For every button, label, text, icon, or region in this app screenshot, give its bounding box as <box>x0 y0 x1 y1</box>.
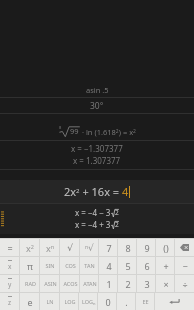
button[interactable]: ASIN <box>40 275 60 292</box>
button[interactable]: () <box>156 239 175 256</box>
button[interactable]: = <box>0 239 20 256</box>
staticText: LOG <box>64 298 76 305</box>
button[interactable]: 3 <box>137 275 156 292</box>
staticText: 2 <box>125 278 131 290</box>
staticText: = <box>7 242 13 254</box>
button[interactable]: × <box>156 275 175 292</box>
staticText: 30° <box>90 100 104 112</box>
staticText: 2 <box>115 220 119 229</box>
button[interactable]: TAN <box>80 257 99 274</box>
staticText: 6 <box>144 260 150 272</box>
staticText: EE <box>142 298 149 305</box>
button[interactable]: LN <box>40 293 60 310</box>
button[interactable]: z <box>0 293 20 310</box>
button[interactable]: asin .5 <box>0 83 194 97</box>
staticText: · ln (1.6182) = x2 <box>80 127 136 137</box>
staticText: π <box>27 260 33 272</box>
button[interactable]: π <box>20 257 40 274</box>
staticText: ACOS <box>63 280 78 287</box>
button[interactable]: RAD <box>20 275 40 292</box>
staticText: n√ <box>85 243 94 253</box>
staticText: 0 <box>105 296 111 308</box>
button[interactable]: x2 <box>20 239 40 256</box>
button[interactable]: SIN <box>40 257 60 274</box>
button[interactable]: Backspace <box>175 239 194 256</box>
staticText: x = −4 − 3 <box>75 207 111 218</box>
staticText: e <box>27 296 33 308</box>
button[interactable]: 4 <box>99 257 118 274</box>
button[interactable]: 8 <box>118 239 137 256</box>
button[interactable]: 0 <box>98 293 117 310</box>
staticText: x = 1.307377 <box>73 155 121 166</box>
button[interactable]: 1 <box>99 275 118 292</box>
staticText: () <box>163 242 169 254</box>
button[interactable]: EE <box>136 293 155 310</box>
staticText: y <box>8 280 12 289</box>
staticText: 4 <box>106 260 112 272</box>
staticText: x2 <box>26 242 34 254</box>
button[interactable]: LOGn <box>79 293 98 310</box>
staticText: x = −1.307377 <box>71 143 123 154</box>
staticText: ATAN <box>83 280 97 287</box>
staticText: TAN <box>84 262 95 269</box>
staticText: z <box>8 298 12 307</box>
button[interactable]: − <box>175 257 194 274</box>
button[interactable]: n√ <box>80 239 99 256</box>
staticText: × <box>163 278 169 290</box>
button[interactable]: ATAN <box>80 275 99 292</box>
staticText: 1 <box>106 278 112 290</box>
button[interactable]: 8 <box>0 123 194 140</box>
staticText: 8 <box>125 242 131 254</box>
staticText: 9 <box>144 242 150 254</box>
button[interactable]: √ <box>60 239 80 256</box>
staticText: + <box>163 260 169 272</box>
button[interactable]: 6 <box>137 257 156 274</box>
button[interactable]: y <box>0 275 20 292</box>
staticText: 8 <box>59 125 62 130</box>
button[interactable]: LOG <box>60 293 79 310</box>
staticText: ASIN <box>44 280 57 287</box>
button[interactable]: xn <box>40 239 60 256</box>
button[interactable]: 7 <box>99 239 118 256</box>
button[interactable]: COS <box>60 257 80 274</box>
staticText: RAD <box>25 280 36 287</box>
button[interactable]: e <box>20 293 40 310</box>
button[interactable]: 2x2 + 16x = 4 <box>0 180 194 203</box>
button[interactable]: 30° <box>0 98 194 113</box>
staticText: 3 <box>144 278 150 290</box>
staticText: ÷ <box>182 278 188 290</box>
button[interactable]: + <box>156 257 175 274</box>
staticText: 2 <box>115 208 119 217</box>
button[interactable]: ÷ <box>175 275 194 292</box>
staticText: asin .5 <box>86 85 109 95</box>
button[interactable]: x <box>0 257 20 274</box>
staticText: √ <box>67 243 73 253</box>
button[interactable]: 5 <box>118 257 137 274</box>
button[interactable]: 9 <box>137 239 156 256</box>
staticText: x <box>8 262 12 271</box>
staticText: x = −4 + 3 <box>75 219 111 230</box>
button[interactable]: Enter <box>155 293 194 310</box>
staticText: 99 <box>70 126 79 136</box>
staticText: 5 <box>125 260 131 272</box>
button[interactable]: 2 <box>118 275 137 292</box>
staticText: 7 <box>106 242 112 254</box>
button[interactable]: ACOS <box>60 275 80 292</box>
staticText: COS <box>65 262 76 269</box>
staticText: − <box>182 260 188 272</box>
staticText: 2x2 + 16x = 4 <box>64 184 129 199</box>
staticText: LN <box>46 298 54 305</box>
staticText: . <box>125 296 128 308</box>
button[interactable]: . <box>117 293 136 310</box>
staticText: LOGn <box>82 298 96 306</box>
staticText: SIN <box>45 262 55 269</box>
staticText: xn <box>46 242 55 254</box>
